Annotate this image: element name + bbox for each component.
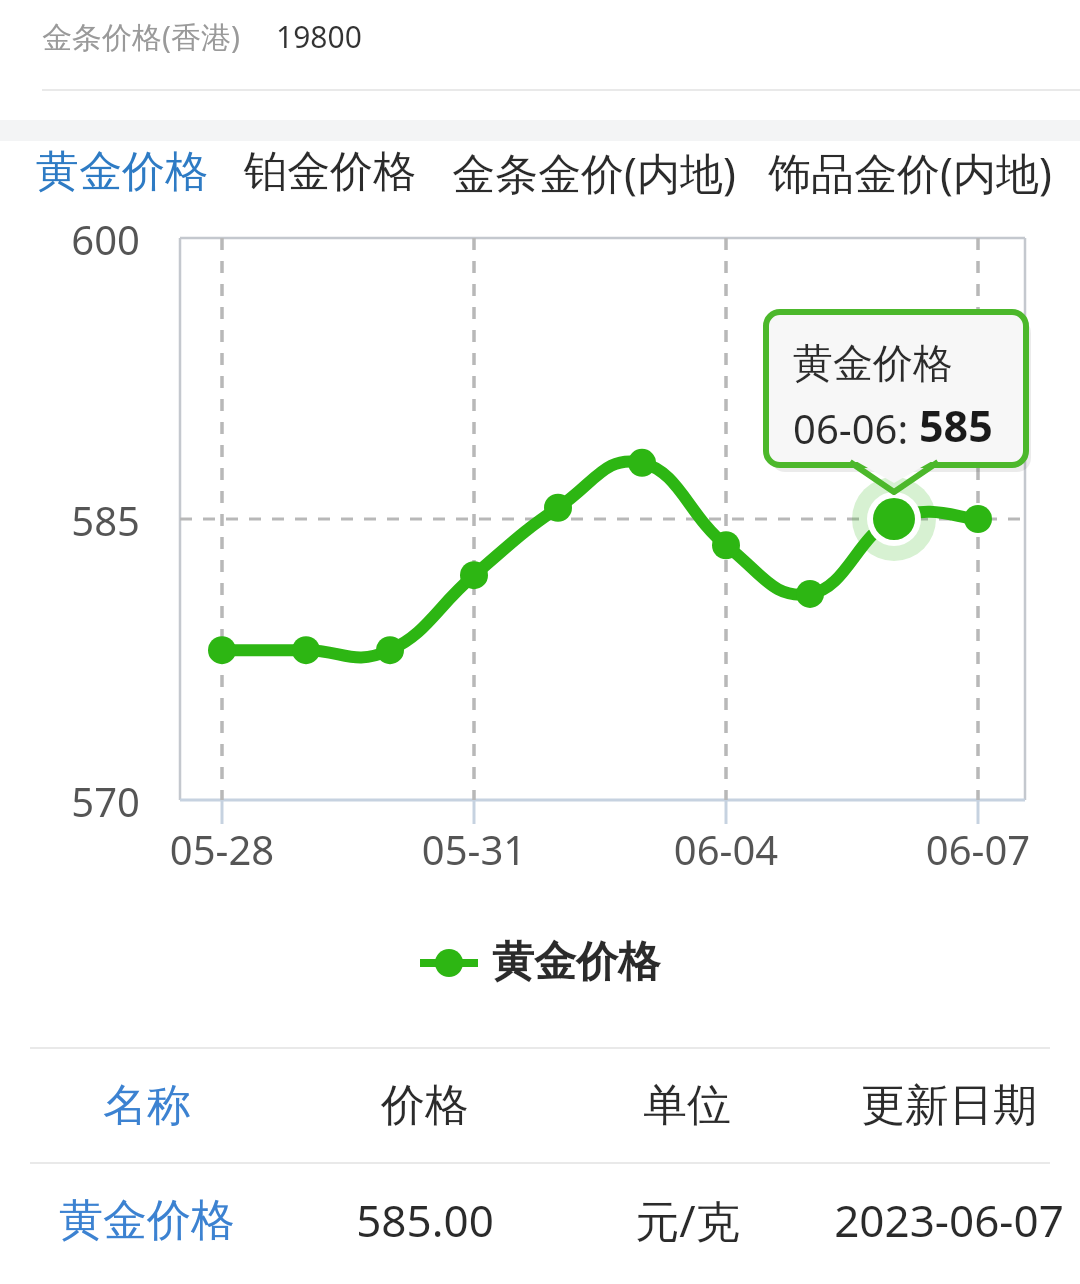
button[interactable]: 黄金价格	[36, 145, 208, 199]
button[interactable]: 铂金价格	[244, 145, 416, 199]
button[interactable]: 饰品金价(内地)	[768, 143, 1052, 202]
staticText: 黄金价格	[492, 936, 660, 989]
staticText: 585	[919, 396, 993, 455]
button[interactable]: 黄金价格	[420, 936, 660, 989]
staticText: 06-07	[888, 822, 1068, 876]
staticText: 06-06:	[793, 401, 919, 455]
staticText: 金条金价(内地)	[452, 143, 736, 202]
staticText: 饰品金价(内地)	[768, 143, 1052, 202]
staticText: 价格	[381, 1078, 469, 1133]
button[interactable]: 黄金价格	[0, 1188, 1080, 1252]
staticText: 黄金价格	[793, 338, 953, 388]
staticText: 05-31	[384, 822, 564, 876]
staticText: 05-28	[132, 822, 312, 876]
staticText: 元/克	[635, 1190, 740, 1250]
staticText: 金条价格(香港)	[42, 16, 240, 57]
button[interactable]: 金条金价(内地)	[452, 143, 736, 202]
staticText: 名称	[103, 1078, 191, 1133]
staticText: 585.00	[356, 1190, 494, 1250]
staticText: 单位	[643, 1078, 731, 1133]
staticText: 更新日期	[861, 1078, 1037, 1133]
button[interactable]: 名称	[0, 1073, 1080, 1137]
staticText: 铂金价格	[244, 145, 416, 199]
staticText: 570	[16, 774, 140, 828]
staticText: 2023-06-07	[834, 1190, 1064, 1250]
staticText: 600	[16, 212, 140, 266]
staticText: 黄金价格	[59, 1193, 235, 1248]
staticText: 585	[16, 493, 140, 547]
staticText: 06-04	[636, 822, 816, 876]
staticText: 黄金价格	[36, 145, 208, 199]
staticText: 19800	[276, 16, 362, 57]
